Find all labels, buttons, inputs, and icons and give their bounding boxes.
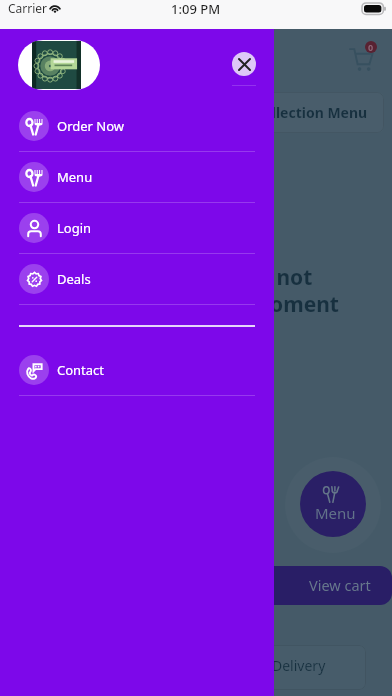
staticText: Deals <box>57 270 91 288</box>
staticText: 0 <box>368 41 374 53</box>
staticText: Contact <box>57 361 105 379</box>
button[interactable]: Menu <box>0 152 274 202</box>
staticText: Delivery <box>272 656 326 675</box>
staticText: We are not <box>199 263 313 292</box>
button[interactable]: Collection Menu <box>8 92 384 133</box>
button[interactable]: Deals <box>0 254 274 304</box>
button[interactable]: Login <box>0 203 274 253</box>
staticText: Menu <box>57 168 93 186</box>
staticText: 1:09 PM <box>171 0 221 18</box>
button[interactable]: Menu <box>300 471 366 537</box>
button[interactable]: Cart <box>345 40 381 76</box>
button[interactable]: Delivery <box>8 645 366 690</box>
staticText: Carrier <box>8 0 48 16</box>
staticText: taking orders at the moment <box>35 290 339 319</box>
button[interactable]: View cart <box>0 566 392 605</box>
staticText: Order Now <box>57 117 125 135</box>
staticText: View cart <box>309 575 371 595</box>
staticText: Menu <box>315 503 356 523</box>
button[interactable]: Close <box>232 52 256 76</box>
staticText: Collection Menu <box>254 103 368 122</box>
button[interactable]: Order Now <box>0 101 274 151</box>
staticText: Login <box>57 219 92 237</box>
button[interactable]: Contact <box>0 345 274 395</box>
